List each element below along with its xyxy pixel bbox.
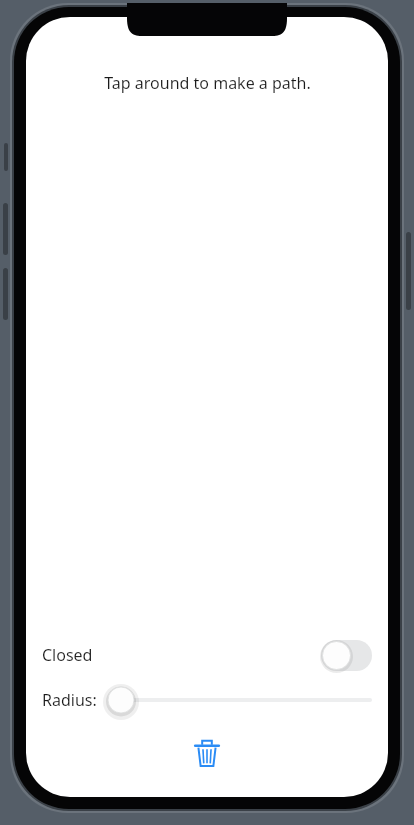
staticText: Closed (42, 644, 93, 666)
staticText: Tap around to make a path. (104, 72, 311, 94)
button[interactable]: Delete path (185, 731, 229, 775)
button[interactable] (107, 683, 372, 717)
button[interactable]: Closed (26, 635, 388, 675)
staticText: Radius: (42, 689, 97, 711)
button[interactable]: Closed toggle (321, 640, 372, 671)
